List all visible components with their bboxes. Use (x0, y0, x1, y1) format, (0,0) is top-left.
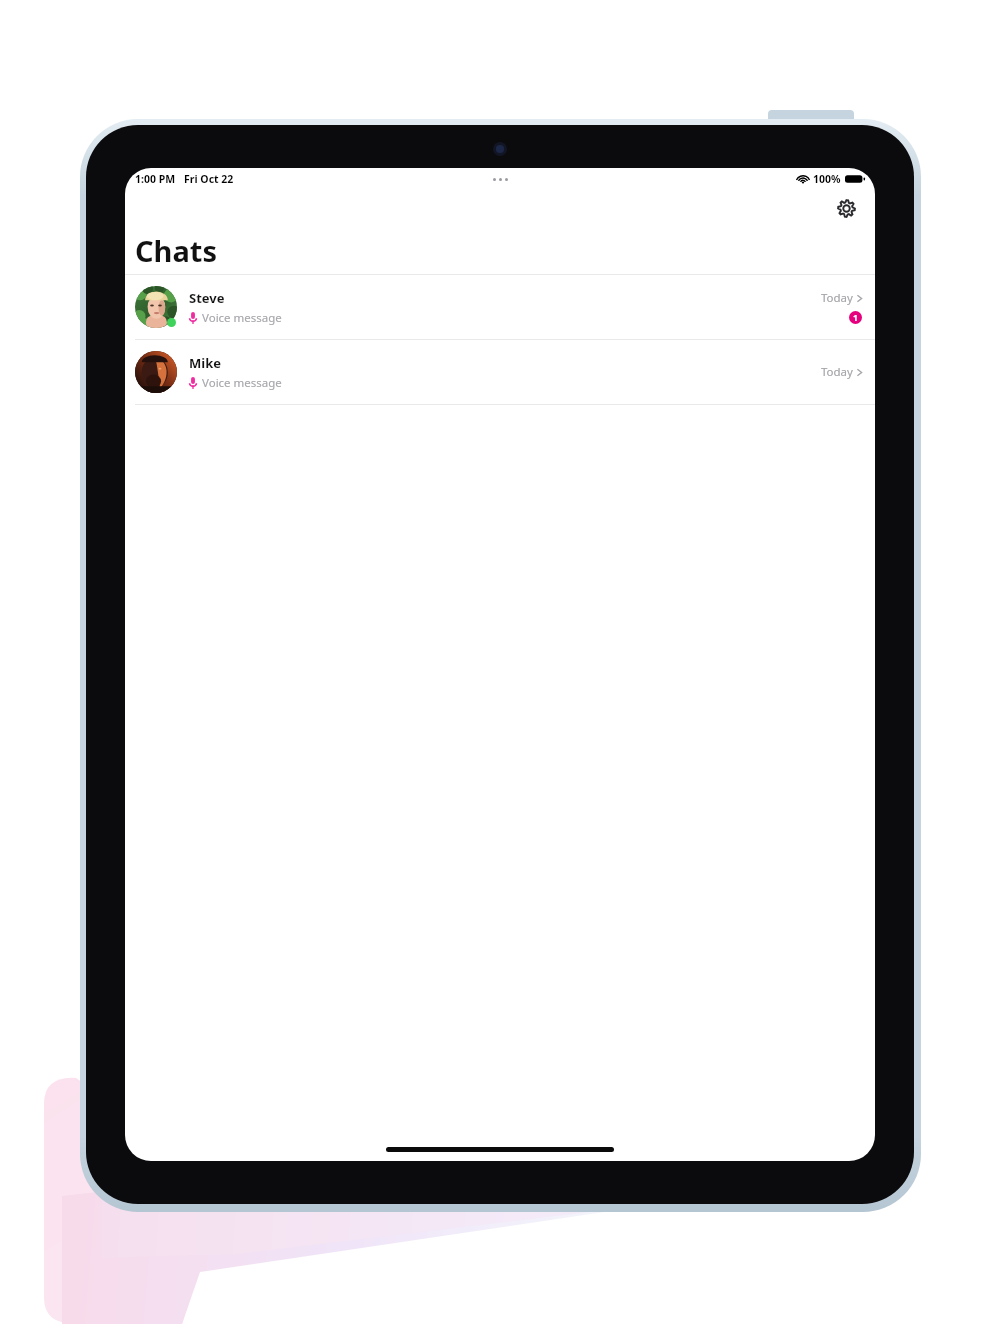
staticText: Today (821, 364, 853, 380)
staticText: 1 (853, 312, 858, 324)
button[interactable]: Mike (125, 340, 875, 404)
staticText: Voice message (202, 375, 282, 391)
staticText: Today (821, 290, 853, 306)
staticText: Fri Oct 22 (184, 172, 234, 186)
button[interactable]: Steve (125, 275, 875, 339)
staticText: Mike (189, 354, 221, 372)
staticText: Chats (135, 231, 217, 270)
staticText: Steve (189, 289, 225, 307)
staticText: 1:00 PM (135, 172, 176, 186)
staticText: Voice message (202, 310, 282, 326)
button[interactable]: Settings (831, 193, 861, 223)
staticText: 100% (813, 172, 841, 186)
